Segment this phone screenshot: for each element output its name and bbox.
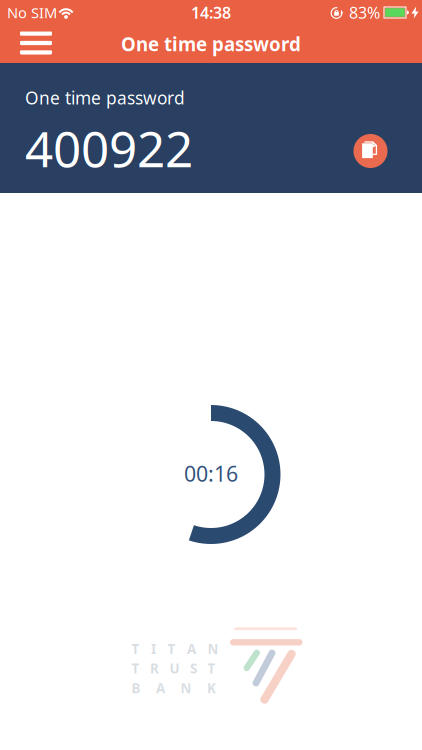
staticText: 83% <box>349 2 380 23</box>
staticText: N <box>207 640 218 658</box>
staticText: No SIM <box>7 3 57 22</box>
staticText: A <box>187 640 196 658</box>
staticText: One time password <box>25 86 185 109</box>
button[interactable]: Copy one time password <box>353 134 387 168</box>
staticText: R <box>150 660 159 677</box>
staticText: B <box>131 679 140 697</box>
staticText: One time password <box>121 32 301 56</box>
staticText: U <box>169 660 179 677</box>
button[interactable]: Menu <box>0 32 52 55</box>
staticText: K <box>207 679 216 697</box>
staticText: T <box>131 660 139 677</box>
staticText: 14:38 <box>191 2 231 23</box>
staticText: T <box>131 640 139 658</box>
staticText: A <box>156 679 165 697</box>
staticText: 400922 <box>25 115 193 181</box>
staticText: S <box>190 660 197 677</box>
staticText: I <box>151 640 156 658</box>
staticText: 00:16 <box>184 459 238 488</box>
staticText: T <box>167 640 175 658</box>
staticText: T <box>207 660 215 677</box>
staticText: N <box>180 679 191 697</box>
